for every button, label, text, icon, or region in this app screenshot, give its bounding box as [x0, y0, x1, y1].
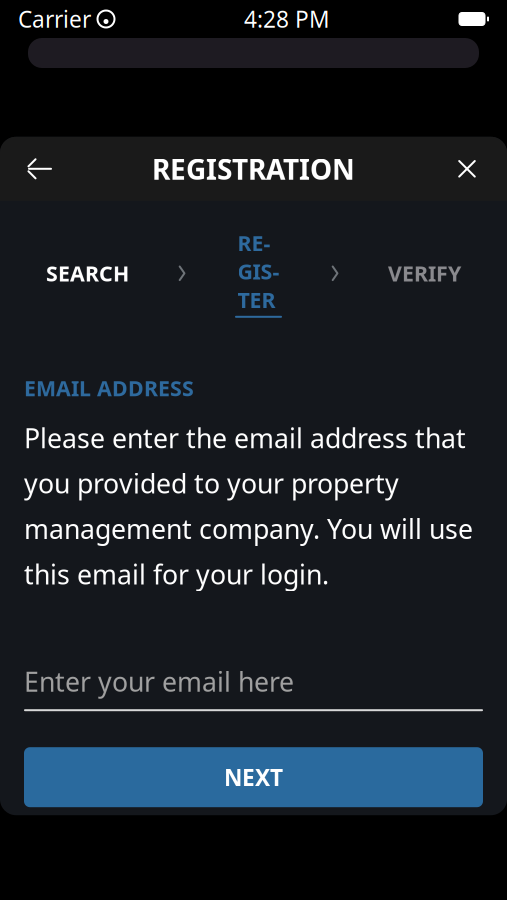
staticText: 4:28 PM [244, 4, 330, 34]
button[interactable]: Enter your email here [0, 664, 507, 711]
button[interactable]: NEXT [0, 747, 507, 807]
staticText: REGISTER [237, 229, 279, 314]
staticText: Carrier [18, 4, 91, 34]
staticText: REGISTRATION [152, 150, 355, 187]
staticText: NEXT [224, 762, 283, 792]
button[interactable]: Back [12, 137, 68, 201]
button[interactable]: VERIFY [388, 259, 461, 287]
button[interactable]: SEARCH [46, 259, 129, 287]
staticText: Please enter the email address that you … [24, 420, 473, 592]
staticText: Enter your email here [24, 664, 294, 699]
staticText: SEARCH [46, 259, 129, 287]
button[interactable]: REGISTER [235, 229, 282, 318]
staticText: EMAIL ADDRESS [24, 374, 194, 402]
button[interactable]: Close [439, 137, 495, 201]
staticText: VERIFY [388, 259, 461, 287]
